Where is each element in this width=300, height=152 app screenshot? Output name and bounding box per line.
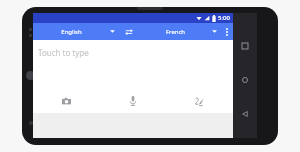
staticText: 5:00 <box>218 14 230 22</box>
button[interactable]: Camera input <box>33 89 99 113</box>
button[interactable]: Recent apps <box>235 36 255 56</box>
button[interactable]: English <box>33 23 119 40</box>
button[interactable]: Touch to type <box>33 40 233 89</box>
staticText: French <box>139 28 212 36</box>
button[interactable]: Home <box>235 70 255 90</box>
button[interactable]: More options <box>221 23 233 40</box>
button[interactable]: French <box>139 23 221 40</box>
button[interactable]: Back <box>235 104 255 124</box>
button[interactable]: Voice input <box>99 89 166 113</box>
button[interactable]: Swap languages <box>119 23 139 40</box>
staticText: English <box>33 28 110 36</box>
button[interactable]: Handwriting input <box>166 89 233 113</box>
staticText: Touch to type <box>38 47 89 58</box>
